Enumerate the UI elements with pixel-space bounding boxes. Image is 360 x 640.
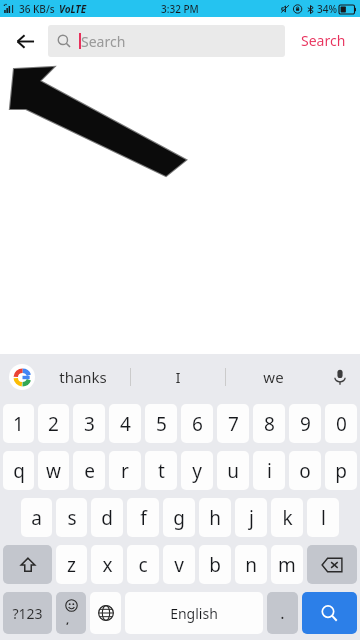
- button[interactable]: 3: [73, 404, 105, 443]
- button[interactable]: Search: [295, 23, 352, 58]
- staticText: j: [249, 505, 254, 531]
- button[interactable]: c: [127, 545, 159, 584]
- staticText: 5: [156, 411, 167, 437]
- button[interactable]: we: [226, 354, 320, 400]
- button[interactable]: w: [38, 451, 69, 490]
- staticText: c: [138, 552, 148, 578]
- staticText: m: [278, 552, 296, 578]
- staticText: d: [101, 505, 113, 531]
- button[interactable]: d: [91, 498, 123, 537]
- button[interactable]: 0: [325, 404, 357, 443]
- button[interactable]: b: [199, 545, 231, 584]
- button[interactable]: h: [199, 498, 231, 537]
- staticText: 34%: [317, 2, 337, 16]
- button[interactable]: 9: [289, 404, 321, 443]
- staticText: y: [192, 458, 202, 484]
- staticText: w: [46, 458, 61, 484]
- staticText: 4: [120, 411, 131, 437]
- button[interactable]: x: [91, 545, 123, 584]
- button[interactable]: 5: [145, 404, 177, 443]
- staticText: p: [335, 458, 347, 484]
- staticText: I: [175, 367, 181, 387]
- staticText: f: [140, 505, 147, 531]
- button[interactable]: 7: [217, 404, 249, 443]
- staticText: 0: [336, 411, 347, 437]
- staticText: x: [102, 552, 113, 578]
- button[interactable]: Change language: [90, 592, 121, 634]
- staticText: l: [321, 505, 326, 531]
- button[interactable]: 2: [38, 404, 69, 443]
- staticText: ,: [66, 612, 70, 627]
- staticText: 3: [84, 411, 95, 437]
- staticText: 2: [48, 411, 59, 437]
- staticText: English: [170, 604, 218, 623]
- button[interactable]: u: [217, 451, 249, 490]
- button[interactable]: l: [307, 498, 339, 537]
- staticText: n: [245, 552, 257, 578]
- staticText: 8: [264, 411, 275, 437]
- button[interactable]: r: [109, 451, 141, 490]
- staticText: e: [84, 458, 95, 484]
- button[interactable]: Search: [302, 592, 357, 634]
- button[interactable]: z: [56, 545, 87, 584]
- button[interactable]: t: [145, 451, 177, 490]
- staticText: t: [158, 458, 165, 484]
- button[interactable]: 8: [253, 404, 285, 443]
- staticText: VoLTE: [59, 2, 87, 16]
- staticText: o: [299, 458, 311, 484]
- button[interactable]: p: [325, 451, 357, 490]
- button[interactable]: English: [125, 592, 263, 634]
- button[interactable]: v: [163, 545, 195, 584]
- staticText: r: [121, 458, 129, 484]
- button[interactable]: e: [73, 451, 105, 490]
- button[interactable]: Back: [10, 26, 40, 56]
- button[interactable]: q: [3, 451, 34, 490]
- staticText: u: [227, 458, 239, 484]
- button[interactable]: Emoji: [56, 592, 86, 634]
- staticText: thanks: [59, 367, 107, 387]
- staticText: Search: [301, 31, 346, 50]
- staticText: 9: [300, 411, 311, 437]
- button[interactable]: f: [127, 498, 159, 537]
- button[interactable]: 1: [3, 404, 34, 443]
- staticText: v: [174, 552, 184, 578]
- staticText: 1: [13, 411, 24, 437]
- button[interactable]: n: [235, 545, 267, 584]
- button[interactable]: 6: [181, 404, 213, 443]
- button[interactable]: j: [235, 498, 267, 537]
- button[interactable]: a: [21, 498, 52, 537]
- button[interactable]: Search: [48, 25, 285, 57]
- staticText: ?123: [12, 604, 43, 623]
- button[interactable]: Google: [9, 364, 35, 390]
- button[interactable]: s: [56, 498, 87, 537]
- staticText: .: [280, 602, 285, 624]
- button[interactable]: Backspace: [307, 545, 357, 584]
- button[interactable]: g: [163, 498, 195, 537]
- staticText: s: [67, 505, 77, 531]
- staticText: 3:32 PM: [161, 2, 199, 16]
- button[interactable]: i: [253, 451, 285, 490]
- staticText: Search: [81, 32, 126, 51]
- staticText: z: [67, 552, 76, 578]
- staticText: b: [209, 552, 221, 578]
- staticText: k: [282, 505, 293, 531]
- button[interactable]: m: [271, 545, 303, 584]
- button[interactable]: Shift: [3, 545, 52, 584]
- staticText: 36 KB/s: [19, 2, 55, 16]
- staticText: 6: [192, 411, 203, 437]
- staticText: 7: [228, 411, 239, 437]
- button[interactable]: o: [289, 451, 321, 490]
- staticText: a: [31, 505, 42, 531]
- staticText: q: [13, 458, 25, 484]
- button[interactable]: I: [131, 354, 225, 400]
- staticText: i: [267, 458, 272, 484]
- button[interactable]: y: [181, 451, 213, 490]
- button[interactable]: .: [267, 592, 298, 634]
- button[interactable]: Voice input: [320, 354, 360, 400]
- button[interactable]: 4: [109, 404, 141, 443]
- button[interactable]: k: [271, 498, 303, 537]
- staticText: g: [173, 505, 185, 531]
- button[interactable]: thanks: [35, 354, 130, 400]
- staticText: h: [209, 505, 221, 531]
- button[interactable]: ?123: [3, 592, 52, 634]
